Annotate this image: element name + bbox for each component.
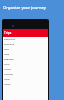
button[interactable]: Arrival (3, 67, 48, 72)
button[interactable]: Departure (3, 37, 48, 42)
button[interactable]: Gate (3, 52, 48, 57)
staticText: Trips (4, 31, 12, 35)
staticText: Boarding (4, 43, 15, 46)
staticText: Class (4, 63, 10, 66)
button[interactable]: Notes (3, 82, 48, 87)
button[interactable]: Boarding (3, 42, 48, 47)
staticText: Departure (4, 38, 16, 41)
button[interactable]: Seat (3, 47, 48, 52)
staticText: Notes (4, 83, 11, 86)
staticText: Gate (4, 53, 10, 56)
button[interactable]: Hotel (3, 77, 48, 82)
staticText: Baggage (4, 58, 14, 61)
staticText: Arrival (4, 68, 12, 71)
button[interactable]: Class (3, 62, 48, 67)
button[interactable]: Trips (4, 31, 12, 35)
button[interactable]: Transfer (3, 72, 48, 77)
button[interactable]: Baggage (3, 57, 48, 62)
staticText: Hotel (4, 78, 10, 81)
staticText: Organize your journey (3, 5, 46, 10)
staticText: Seat (4, 48, 9, 51)
staticText: Transfer (4, 73, 14, 76)
